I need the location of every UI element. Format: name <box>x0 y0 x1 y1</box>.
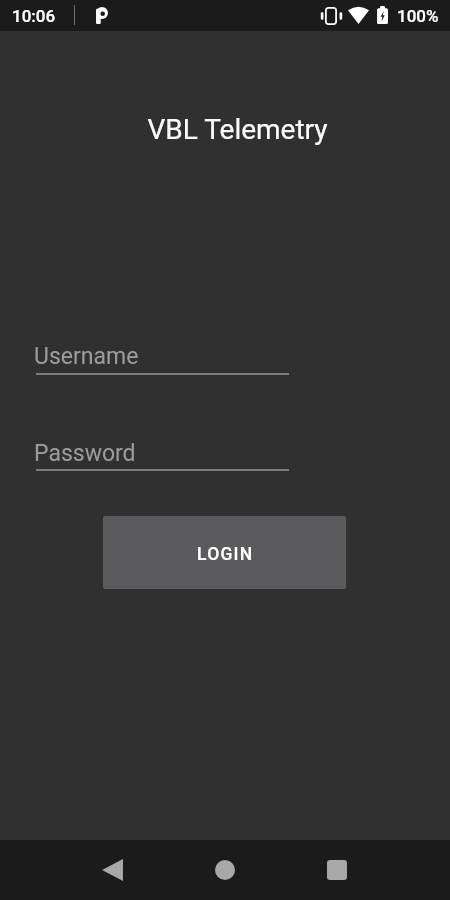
button[interactable]: Password <box>36 440 289 471</box>
button[interactable]: Recent apps <box>307 840 367 900</box>
staticText: 10:06 <box>12 6 56 26</box>
staticText: Password <box>34 440 136 467</box>
button[interactable]: LOGIN <box>103 516 346 589</box>
button[interactable]: Home <box>195 840 255 900</box>
staticText: VBL Telemetry <box>147 113 328 146</box>
staticText: LOGIN <box>197 544 254 565</box>
staticText: 100% <box>397 6 439 26</box>
button[interactable]: Back <box>82 840 142 900</box>
button[interactable]: Username <box>36 343 289 375</box>
staticText: Username <box>34 343 139 370</box>
